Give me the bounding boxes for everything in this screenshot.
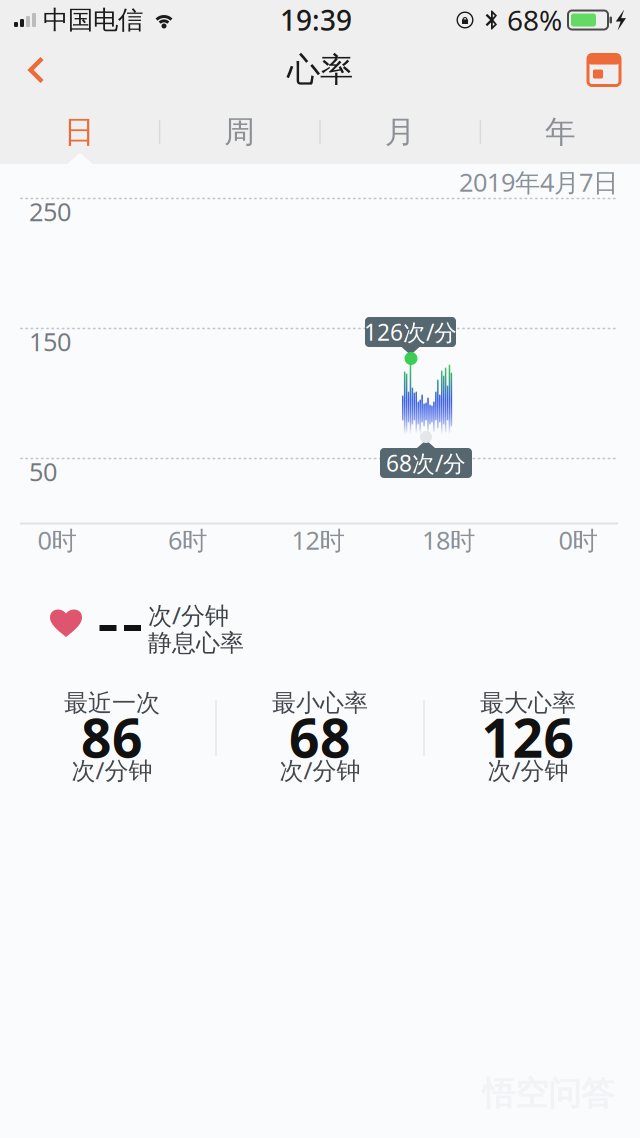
button[interactable]: 周 — [160, 100, 319, 164]
staticText: 次/分钟 — [487, 754, 568, 786]
button[interactable]: 年 — [481, 100, 640, 164]
staticText: 最小心率 — [272, 688, 368, 718]
staticText: 0时 — [558, 523, 597, 557]
staticText: 68次/分 — [386, 448, 466, 478]
staticText: 中国电信 — [43, 4, 143, 35]
staticText: 50 — [29, 455, 57, 488]
staticText: 68% — [507, 1, 562, 39]
staticText: 68 — [289, 702, 351, 772]
staticText: 静息心率 — [148, 628, 244, 658]
staticText: 2019年4月7日 — [459, 165, 618, 199]
staticText: 心率 — [287, 49, 353, 90]
staticText: 0时 — [37, 523, 76, 557]
staticText: 19:39 — [280, 1, 352, 39]
button[interactable]: 返回 — [9, 41, 63, 99]
button[interactable]: 日历 — [577, 41, 631, 99]
button[interactable]: 日 — [0, 100, 159, 164]
staticText: 18时 — [422, 523, 475, 557]
staticText: 126 — [481, 702, 574, 772]
staticText: 月 — [385, 113, 416, 151]
staticText: 86 — [81, 702, 143, 772]
staticText: 6时 — [168, 523, 207, 557]
staticText: 次/分钟 — [71, 754, 152, 786]
staticText: 最近一次 — [64, 688, 160, 718]
staticText: 126次/分 — [364, 317, 457, 347]
staticText: 12时 — [291, 523, 344, 557]
staticText: 次/分钟 — [148, 599, 229, 631]
staticText: 250 — [29, 195, 71, 228]
staticText: 悟空问答 — [482, 1073, 614, 1114]
staticText: 最大心率 — [480, 688, 576, 718]
staticText: 次/分钟 — [279, 754, 360, 786]
staticText: 年 — [545, 113, 576, 151]
staticText: 周 — [224, 113, 255, 151]
staticText: 日 — [64, 113, 95, 151]
button[interactable]: 月 — [321, 100, 480, 164]
staticText: 150 — [29, 325, 71, 358]
